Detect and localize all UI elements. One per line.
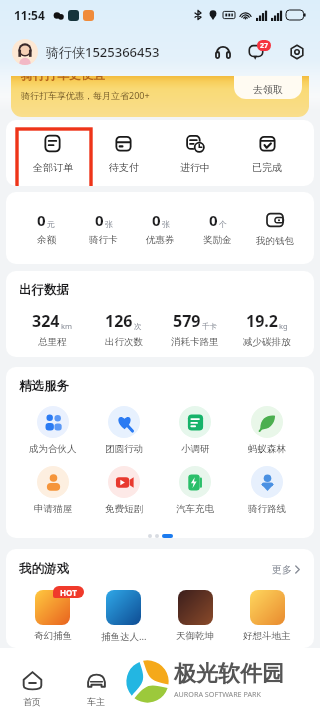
staticText: 骑行 — [151, 696, 169, 707]
staticText: 进行中 — [180, 161, 210, 174]
staticText: 发现 — [215, 696, 233, 707]
staticText: AURORA SOFTWARE PARK — [174, 689, 261, 699]
staticText: 我的游戏 — [19, 561, 69, 577]
button[interactable]: 设置 — [286, 41, 308, 63]
button[interactable]: 免费短剧 — [88, 466, 159, 515]
button[interactable]: 天御乾坤 — [159, 590, 231, 642]
staticText: 汽车充电 — [176, 503, 214, 515]
staticText: 骑行卡 — [89, 234, 118, 246]
staticText: 好想斗地主 — [243, 630, 291, 642]
button[interactable]: 车主 — [64, 670, 128, 707]
staticText: 已完成 — [252, 161, 282, 174]
staticText: 去领取 — [253, 83, 283, 96]
staticText: 车主 — [87, 696, 105, 707]
staticText: 骑行侠1525366453 — [46, 43, 160, 61]
staticText: 总里程 — [38, 336, 67, 348]
staticText: 首页 — [23, 696, 41, 707]
staticText: 次 — [134, 322, 142, 331]
staticText: 元 — [47, 219, 55, 229]
staticText: 全部订单 — [33, 161, 73, 174]
button[interactable]: 全部订单 — [17, 124, 88, 183]
staticText: 优惠券 — [146, 234, 175, 246]
staticText: HOT — [60, 587, 77, 598]
staticText: 奇幻捕鱼 — [34, 630, 72, 642]
staticText: 27 — [260, 41, 269, 51]
staticText: 更多 — [272, 563, 292, 576]
button[interactable]: 去领取 — [234, 76, 302, 99]
staticText: 张 — [162, 219, 170, 229]
staticText: 骑行打车更便宜 — [21, 76, 105, 82]
staticText: 出行次数 — [105, 336, 143, 348]
staticText: km — [61, 321, 73, 331]
button[interactable]: 更多 — [272, 563, 301, 576]
staticText: kg — [279, 321, 288, 331]
button[interactable]: 我的 — [256, 670, 320, 707]
staticText: 11:54 — [14, 7, 45, 23]
button[interactable]: 进行中 — [159, 124, 231, 183]
button[interactable]: 消息 — [248, 40, 272, 64]
button[interactable]: 客服 — [212, 41, 234, 63]
button[interactable]: 汽车充电 — [159, 466, 231, 515]
staticText: 减少碳排放 — [243, 336, 291, 348]
staticText: 捕鱼达人… — [101, 630, 147, 643]
staticText: 团圆行动 — [105, 443, 143, 455]
button[interactable]: 捕鱼达人… — [88, 590, 159, 643]
button[interactable]: 申请猫屋 — [17, 466, 88, 515]
button[interactable]: 0 — [132, 210, 189, 246]
button[interactable]: 骑行 — [128, 670, 192, 707]
staticText: 小调研 — [181, 443, 210, 455]
button[interactable]: 好想斗地主 — [231, 590, 303, 642]
staticText: 天御乾坤 — [176, 630, 214, 642]
button[interactable]: 0 — [75, 210, 132, 246]
staticText: 324 — [32, 310, 60, 332]
button[interactable]: 小调研 — [159, 406, 231, 455]
staticText: 我的钱包 — [256, 235, 294, 247]
button[interactable]: HOT — [17, 590, 88, 642]
button[interactable]: 首页 — [0, 670, 64, 707]
staticText: 极光软件园 — [174, 660, 284, 688]
staticText: 待支付 — [109, 161, 139, 174]
button[interactable]: 发现 — [192, 670, 256, 707]
staticText: 余额 — [37, 234, 56, 246]
staticText: 骑行路线 — [248, 503, 286, 515]
button[interactable]: 0 — [17, 210, 75, 246]
button[interactable]: 骑行路线 — [231, 466, 303, 515]
staticText: 奖励金 — [203, 234, 232, 246]
staticText: 0 — [209, 210, 218, 230]
staticText: 消耗卡路里 — [171, 336, 219, 348]
staticText: 0 — [152, 210, 161, 230]
staticText: 个 — [219, 219, 227, 229]
button[interactable]: 已完成 — [231, 124, 303, 183]
staticText: 张 — [105, 219, 113, 229]
staticText: 免费短剧 — [105, 503, 143, 515]
staticText: 千卡 — [202, 322, 217, 331]
button[interactable]: 团圆行动 — [88, 406, 159, 455]
staticText: 蚂蚁森林 — [248, 443, 286, 455]
staticText: 0 — [95, 210, 104, 230]
button[interactable]: 0 — [189, 210, 246, 246]
staticText: 精选服务 — [19, 378, 69, 394]
staticText: 126 — [105, 310, 133, 332]
staticText: 申请猫屋 — [34, 503, 72, 515]
staticText: 骑行打车享优惠，每月立省200+ — [21, 89, 150, 101]
staticText: 成为合伙人 — [29, 443, 77, 455]
button[interactable]: 我的钱包 — [246, 210, 303, 247]
button[interactable]: 待支付 — [88, 124, 159, 183]
button[interactable]: 成为合伙人 — [17, 406, 88, 455]
staticText: 19.2 — [246, 310, 278, 332]
staticText: 出行数据 — [19, 282, 69, 298]
staticText: 0 — [37, 210, 46, 230]
button[interactable]: 蚂蚁森林 — [231, 406, 303, 455]
staticText: 579 — [173, 310, 201, 332]
